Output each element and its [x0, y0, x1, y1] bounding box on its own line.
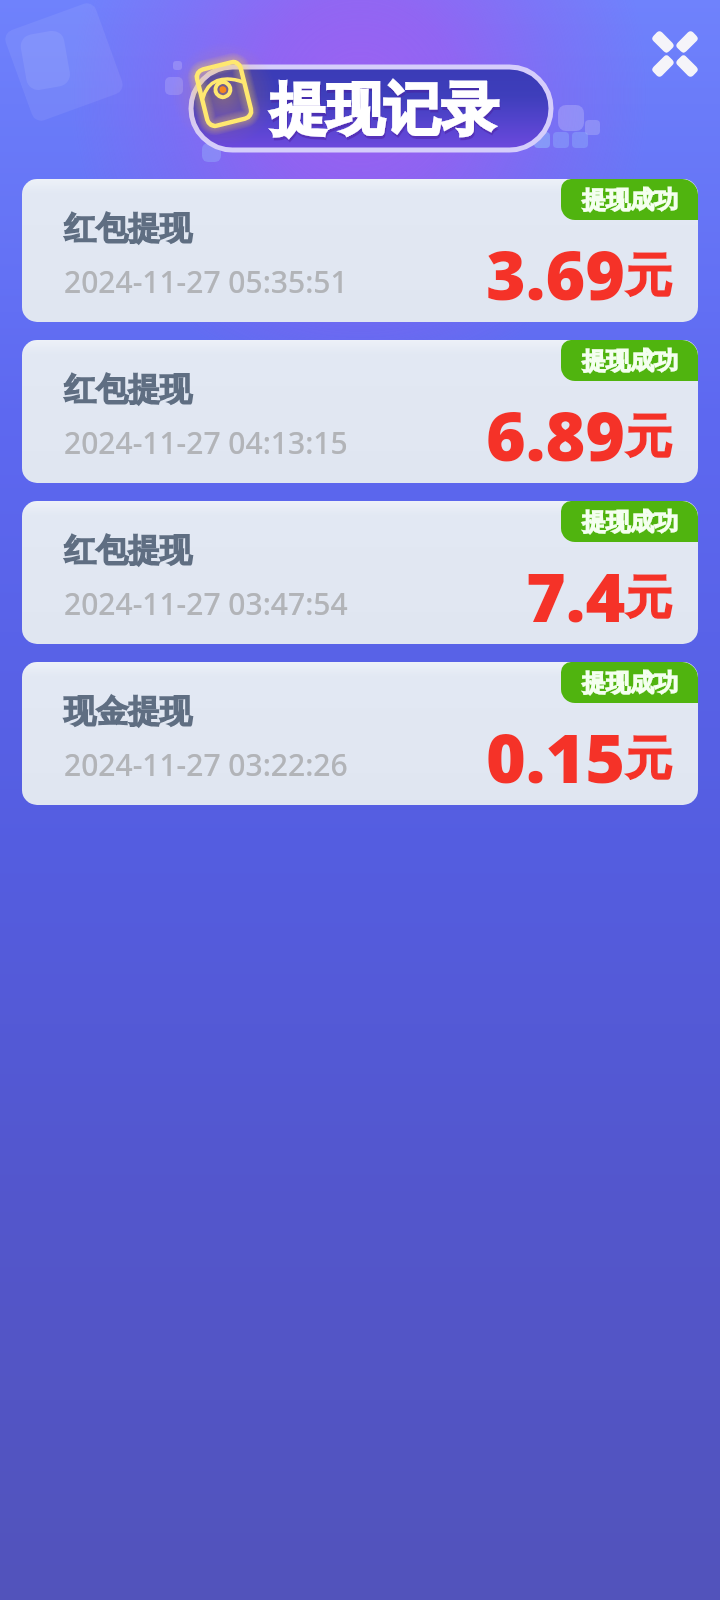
staticText: 2024-11-27 03:47:54	[64, 583, 348, 624]
staticText: 提现成功	[582, 507, 678, 537]
staticText: 提现成功	[582, 346, 678, 376]
staticText: 提现记录	[271, 77, 499, 149]
staticText: 提现记录	[270, 74, 498, 146]
staticText: 提现成功	[582, 185, 678, 215]
staticText: 元	[626, 569, 672, 627]
button[interactable]: Close	[649, 28, 701, 80]
staticText: 元	[626, 408, 672, 466]
staticText: 提现成功	[582, 668, 678, 698]
staticText: 2024-11-27 03:22:26	[64, 744, 348, 785]
button[interactable]: 红包提现	[22, 340, 698, 483]
staticText: 元	[626, 247, 672, 305]
staticText: 红包提现	[64, 208, 192, 248]
staticText: 现金提现	[64, 691, 192, 731]
staticText: 2024-11-27 05:35:51	[64, 261, 348, 302]
button[interactable]: 红包提现	[22, 501, 698, 644]
staticText: 红包提现	[64, 530, 192, 570]
staticText: 2024-11-27 04:13:15	[64, 422, 348, 463]
staticText: 红包提现	[64, 369, 192, 409]
staticText: 6.89	[486, 388, 626, 481]
staticText: 7.4	[526, 549, 626, 642]
staticText: 0.15	[486, 710, 626, 803]
button[interactable]: 现金提现	[22, 662, 698, 805]
staticText: 3.69	[486, 227, 626, 320]
button[interactable]: 红包提现	[22, 179, 698, 322]
staticText: 元	[626, 730, 672, 788]
